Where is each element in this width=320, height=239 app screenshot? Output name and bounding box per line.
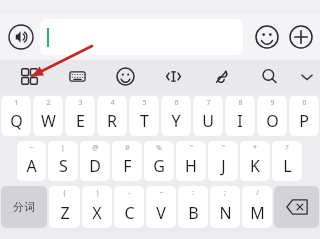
button[interactable]: Text selection <box>149 60 197 93</box>
staticText: 6 <box>174 98 179 108</box>
staticText: Y <box>171 110 181 132</box>
staticText: 分词 <box>13 200 35 214</box>
button[interactable]: Voice input <box>6 22 36 52</box>
button[interactable]: " <box>208 141 238 181</box>
button[interactable]: ( <box>49 186 80 228</box>
staticText: Q <box>10 110 23 132</box>
staticText: - <box>128 188 131 198</box>
staticText: N <box>219 202 232 224</box>
button[interactable]: Keyboard <box>53 60 101 93</box>
staticText: I <box>237 110 243 132</box>
staticText: W <box>41 110 56 132</box>
staticText: C <box>124 202 135 224</box>
staticText: R <box>107 110 117 132</box>
staticText: E <box>76 110 85 132</box>
staticText: 8 <box>238 98 243 108</box>
button[interactable]: # <box>112 141 142 181</box>
button[interactable]: 7 <box>193 96 223 136</box>
button[interactable]: 6 <box>161 96 191 136</box>
staticText: H <box>185 155 197 177</box>
staticText: ~ <box>159 188 164 198</box>
button[interactable]: ? <box>272 141 302 181</box>
button[interactable]: ~ <box>146 186 176 228</box>
button[interactable]: More <box>285 21 317 53</box>
staticText: J <box>221 155 226 177</box>
staticText: X <box>92 202 102 224</box>
button[interactable]: * <box>240 141 270 181</box>
button[interactable]: Backspace <box>274 186 319 228</box>
staticText: 7 <box>206 98 211 108</box>
staticText: # <box>125 143 130 153</box>
button[interactable]: ~ <box>17 141 46 181</box>
staticText: 9 <box>270 98 275 108</box>
button[interactable]: @ <box>80 141 110 181</box>
button[interactable]: 0 <box>289 96 319 136</box>
button[interactable]: : <box>178 186 208 228</box>
button[interactable]: Clipboard <box>197 60 245 93</box>
staticText: Z <box>60 202 70 224</box>
button[interactable]: 8 <box>225 96 255 136</box>
button[interactable]: Emoticons <box>101 60 149 93</box>
button[interactable]: Panel <box>5 60 53 93</box>
button[interactable]: % <box>144 141 174 181</box>
button[interactable]: Search <box>245 60 293 93</box>
staticText: V <box>156 202 166 224</box>
staticText: 4 <box>110 98 115 108</box>
button[interactable]: 4 <box>97 96 127 136</box>
button[interactable]: " <box>176 141 206 181</box>
button[interactable]: ) <box>82 186 112 228</box>
button[interactable]: 5 <box>129 96 159 136</box>
staticText: / <box>256 188 259 198</box>
staticText: 5 <box>142 98 147 108</box>
staticText: ~ <box>29 143 34 153</box>
staticText: ( <box>63 188 66 198</box>
button[interactable]: 2 <box>33 96 63 136</box>
staticText: @ <box>92 143 99 153</box>
staticText: % <box>156 143 162 153</box>
button[interactable]: Hide keyboard <box>293 60 320 93</box>
staticText: " <box>190 143 193 153</box>
button[interactable] <box>40 19 243 55</box>
staticText: B <box>188 202 199 224</box>
button[interactable]: 9 <box>257 96 287 136</box>
staticText: D <box>89 155 101 177</box>
staticText: | <box>61 143 65 153</box>
staticText: P <box>299 110 309 132</box>
staticText: T <box>140 110 149 132</box>
staticText: 0 <box>302 98 307 108</box>
button[interactable]: 分词 <box>1 186 47 228</box>
button[interactable]: 1 <box>1 96 31 136</box>
staticText: F <box>123 155 132 177</box>
staticText: * <box>253 143 257 153</box>
staticText: 1 <box>14 98 19 108</box>
button[interactable]: | <box>48 141 78 181</box>
staticText: 2 <box>46 98 51 108</box>
staticText: U <box>202 110 214 132</box>
button[interactable]: 3 <box>65 96 95 136</box>
staticText: K <box>250 155 260 177</box>
staticText: : <box>192 188 194 198</box>
staticText: ? <box>285 143 289 153</box>
staticText: O <box>266 110 279 132</box>
staticText: 3 <box>78 98 83 108</box>
button[interactable]: - <box>114 186 144 228</box>
button[interactable]: / <box>242 186 272 228</box>
staticText: M <box>250 202 265 224</box>
staticText: G <box>153 155 165 177</box>
staticText: " <box>222 143 225 153</box>
staticText: A <box>26 155 37 177</box>
staticText: L <box>283 155 292 177</box>
staticText: S <box>59 155 68 177</box>
staticText: ; <box>224 188 226 198</box>
button[interactable]: Emoji <box>251 21 283 53</box>
staticText: ) <box>96 188 99 198</box>
button[interactable]: ; <box>210 186 240 228</box>
